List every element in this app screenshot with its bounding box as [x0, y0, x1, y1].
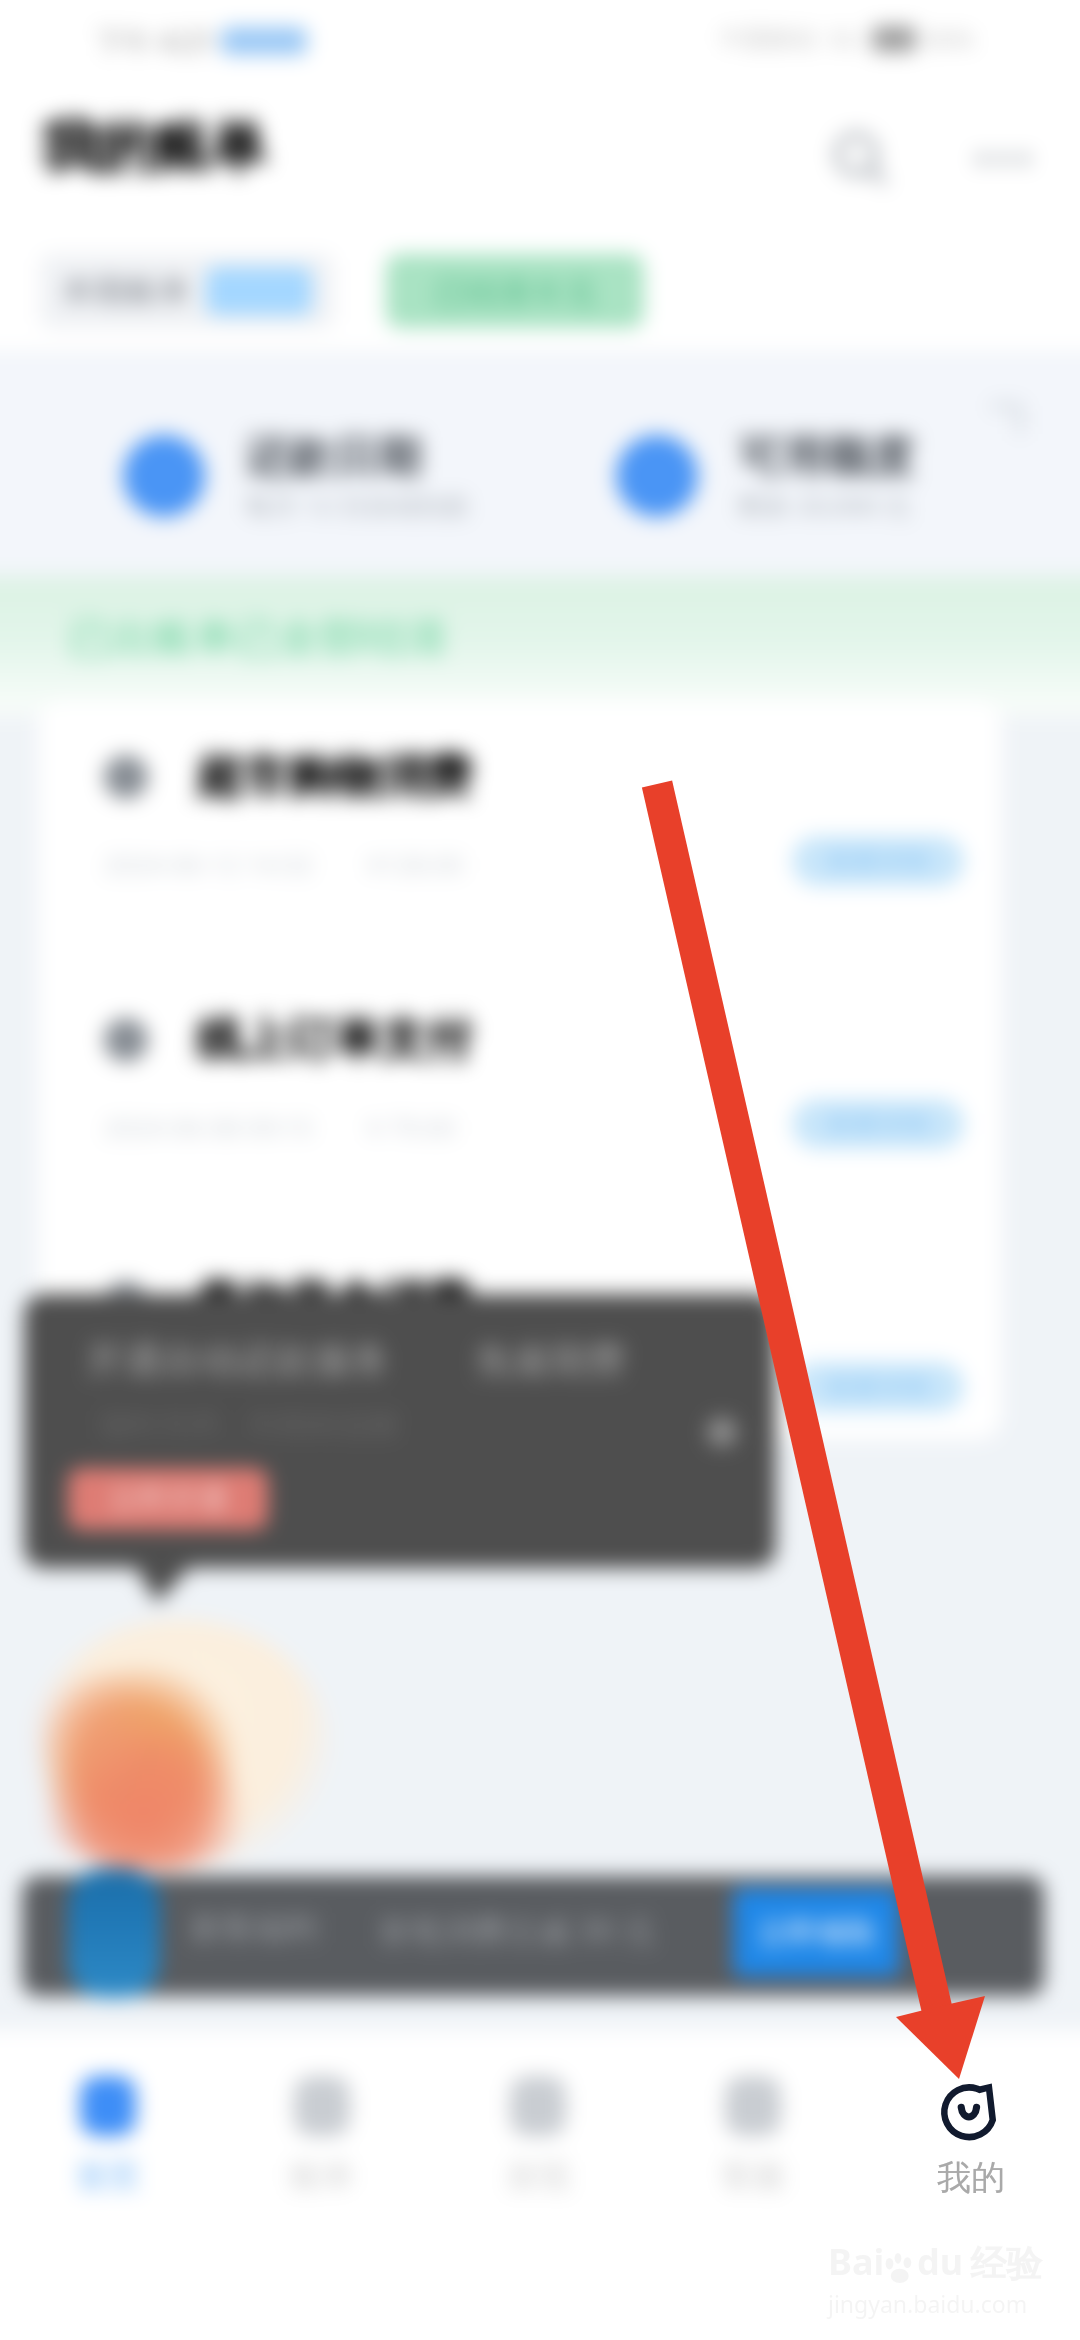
staticText: 中国移动	[720, 24, 816, 54]
staticText: 超市购物消费	[196, 748, 472, 806]
button[interactable]: 已结清 0 元	[386, 254, 644, 328]
staticText: 可用额度	[738, 430, 914, 485]
button[interactable]: 查看详情	[792, 1099, 964, 1149]
staticText: 下午 4:21	[96, 22, 215, 60]
button[interactable]: Search	[824, 122, 898, 196]
button[interactable]: 发现	[438, 2076, 638, 2196]
staticText: 我的账单	[42, 112, 266, 183]
staticText: 剩余 20,000 元	[738, 487, 911, 523]
staticText: 我的	[937, 2156, 1005, 2199]
staticText: 还款日期	[245, 430, 421, 485]
staticText: 已出账单已全部结清	[68, 612, 446, 665]
staticText: 立即开通	[108, 1480, 228, 1518]
button[interactable]: 首页	[8, 2076, 208, 2196]
button[interactable]: 超市购物消费	[38, 714, 1002, 977]
staticText: 已结清 0 元	[434, 269, 597, 313]
staticText: du	[917, 2237, 964, 2286]
button[interactable]: 本期账单	[40, 254, 334, 328]
staticText: jingyan.baidu.com	[828, 2288, 1028, 2319]
staticText: 立即领取	[757, 1914, 877, 1952]
staticText: 餐饮美食消费	[196, 1274, 472, 1332]
staticText: 免逾期费	[474, 1336, 626, 1384]
staticText: 新客福利	[190, 1908, 318, 1948]
staticText: 86%	[926, 22, 974, 55]
button[interactable]: 餐饮美食消费	[38, 1240, 1002, 1440]
button[interactable]: 账单	[222, 2076, 422, 2196]
button[interactable]: 新客福利	[22, 1876, 1044, 1996]
staticText: 线上订单支付	[196, 1011, 472, 1069]
staticText: 查看详情	[826, 1371, 930, 1404]
button[interactable]: 还款日期	[123, 420, 471, 532]
staticText: 客服	[721, 2156, 785, 2196]
button[interactable]: More	[966, 122, 1040, 196]
other: 我的	[940, 2080, 1002, 2142]
button[interactable]: 线上订单支付	[38, 977, 1002, 1240]
staticText: 查看详情	[826, 1108, 930, 1141]
staticText: 每月 12 日自动扣款	[245, 487, 471, 523]
staticText: 首笔消费立减 30 元	[378, 1908, 656, 1952]
button[interactable]: 查看详情	[792, 836, 964, 886]
button[interactable]: 查看详情	[792, 1362, 964, 1412]
staticText: 账单	[290, 2156, 354, 2196]
button[interactable]: 客服	[653, 2076, 853, 2196]
staticText: 查看详情	[826, 845, 930, 878]
staticText: 首页	[76, 2156, 140, 2196]
staticText: 本期账单	[62, 271, 190, 311]
staticText: 经验	[970, 2241, 1042, 2286]
staticText: 开通自动还款服务	[86, 1336, 390, 1384]
button[interactable]: 可用额度	[616, 420, 914, 532]
staticText: 2024-06-03 19:41 ¥ 56.00	[104, 1372, 456, 1407]
button[interactable]: 立即领取	[733, 1888, 900, 1977]
staticText: Bai	[828, 2237, 885, 2286]
button[interactable]: 我的	[871, 2080, 1071, 2199]
button[interactable]: 立即开通	[68, 1468, 268, 1530]
